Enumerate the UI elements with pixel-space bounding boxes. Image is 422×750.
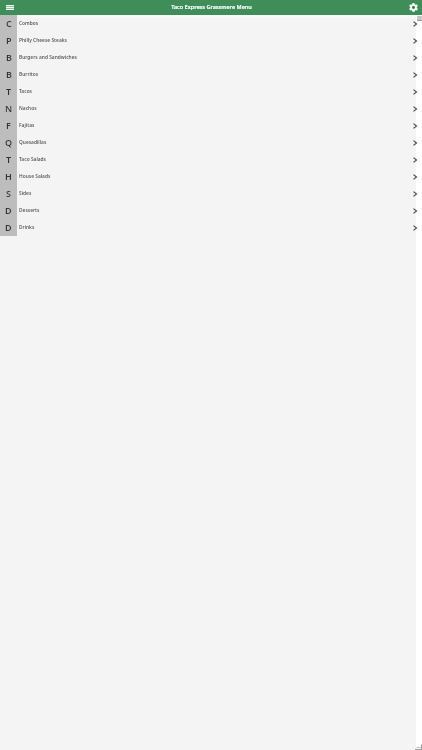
button[interactable]: B bbox=[0, 49, 422, 66]
staticText: D bbox=[5, 204, 12, 216]
button[interactable]: Menu bbox=[3, 1, 16, 14]
staticText: D bbox=[5, 221, 12, 233]
staticText: Quesadillas bbox=[19, 139, 47, 146]
button[interactable]: Q bbox=[0, 134, 422, 151]
staticText: Burgers and Sandwiches bbox=[19, 54, 77, 61]
staticText: House Salads bbox=[19, 173, 51, 180]
button[interactable]: S bbox=[0, 185, 422, 202]
button[interactable]: D bbox=[0, 219, 422, 236]
staticText: T bbox=[6, 85, 12, 97]
staticText: Nachos bbox=[19, 105, 37, 112]
button[interactable]: B bbox=[0, 66, 422, 83]
staticText: H bbox=[5, 170, 12, 182]
staticText: F bbox=[6, 119, 11, 131]
button[interactable]: F bbox=[0, 117, 422, 134]
staticText: B bbox=[6, 68, 12, 80]
button[interactable]: P bbox=[0, 32, 422, 49]
staticText: N bbox=[5, 102, 13, 114]
staticText: S bbox=[6, 187, 11, 199]
staticText: B bbox=[6, 51, 12, 63]
staticText: Drinks bbox=[19, 224, 35, 231]
staticText: Fajitas bbox=[19, 122, 35, 129]
staticText: T bbox=[6, 153, 12, 165]
staticText: Burritos bbox=[19, 71, 39, 78]
staticText: Desserts bbox=[19, 207, 40, 214]
staticText: C bbox=[6, 17, 12, 29]
staticText: Sides bbox=[19, 190, 32, 197]
staticText: Philly Cheese Steaks bbox=[19, 37, 67, 44]
button[interactable]: C bbox=[0, 15, 422, 32]
button[interactable]: N bbox=[0, 100, 422, 117]
button[interactable]: T bbox=[0, 83, 422, 100]
staticText: Q bbox=[5, 136, 13, 148]
button[interactable]: D bbox=[0, 202, 422, 219]
staticText: Taco Salads bbox=[19, 156, 47, 163]
button[interactable]: Settings bbox=[408, 2, 419, 13]
staticText: Taco Express Grassmere Menu bbox=[171, 3, 252, 11]
staticText: Combos bbox=[19, 20, 39, 27]
staticText: Tacos bbox=[19, 88, 33, 95]
button[interactable]: H bbox=[0, 168, 422, 185]
button[interactable]: T bbox=[0, 151, 422, 168]
staticText: P bbox=[6, 34, 12, 46]
